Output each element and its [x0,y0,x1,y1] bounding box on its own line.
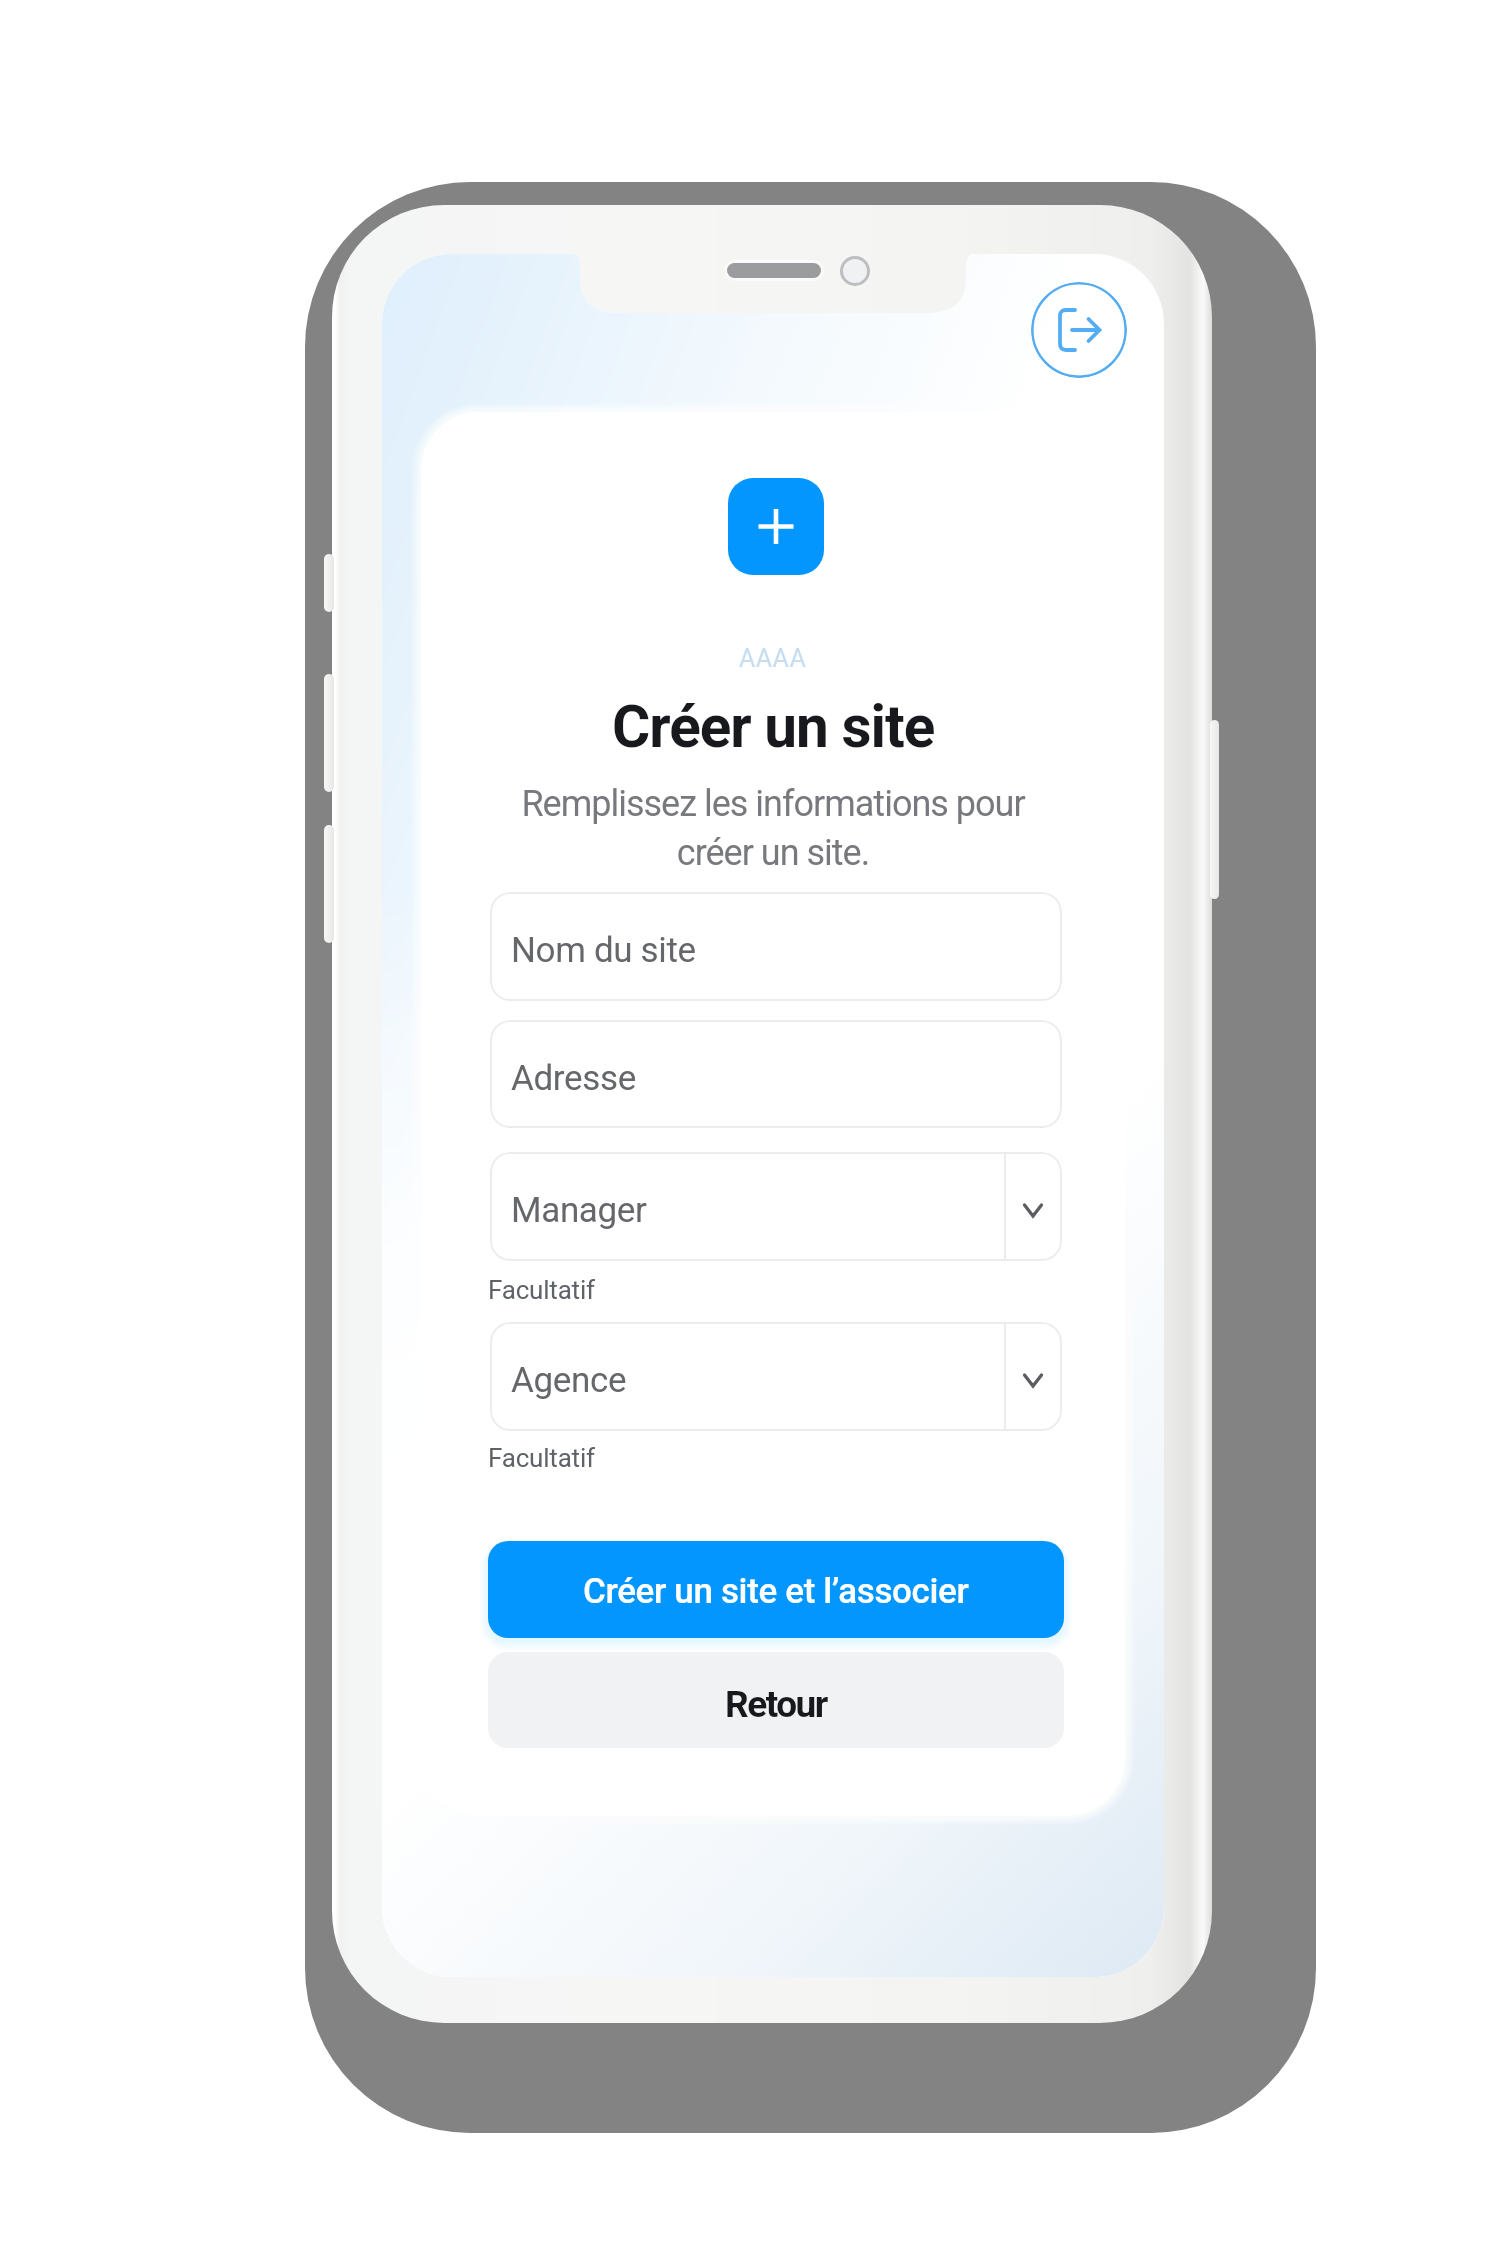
staticText: Nom du site [511,930,696,971]
staticText: Remplissez les informations pour créer u… [521,783,1025,874]
staticText: Manager [511,1190,647,1231]
staticText: Facultatif [488,1443,595,1473]
button[interactable]: Se déconnecter [1031,282,1127,378]
button[interactable]: Adresse [490,1020,1062,1128]
button[interactable]: Manager [490,1152,1062,1261]
button[interactable]: Agence [490,1322,1062,1431]
staticText: AAAA [739,644,807,673]
button[interactable]: Nom du site [490,892,1062,1001]
staticText: Facultatif [488,1275,595,1305]
button[interactable]: Ajouter un logo [728,478,824,575]
staticText: Créer un site et l’associer [583,1571,969,1612]
button[interactable]: Créer un site et l’associer [488,1541,1064,1638]
staticText: Agence [511,1360,627,1401]
button[interactable]: Retour [488,1652,1064,1748]
staticText: Retour [725,1683,827,1726]
staticText: Adresse [511,1058,636,1099]
staticText: Créer un site [612,693,935,762]
